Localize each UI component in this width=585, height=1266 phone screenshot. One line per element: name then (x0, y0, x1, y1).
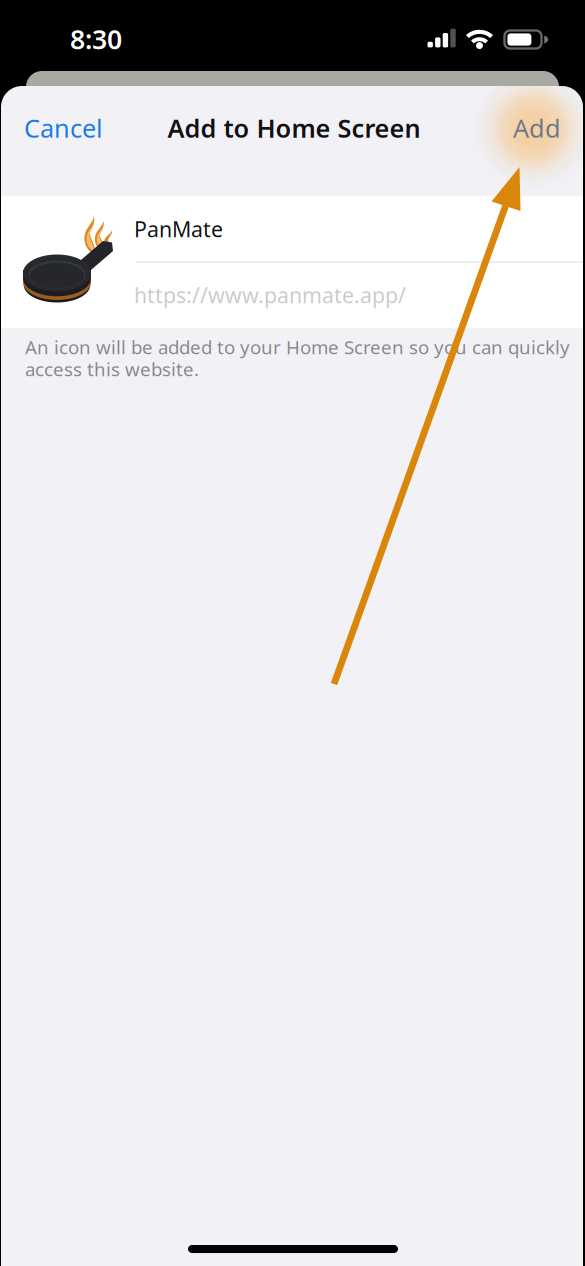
staticText: An icon will be added to your Home Scree… (25, 334, 570, 381)
button[interactable]: PanMate (134, 196, 580, 261)
staticText: Add (513, 111, 561, 145)
staticText: https://www.panmate.app/ (134, 281, 406, 309)
button[interactable]: https://www.panmate.app/ (134, 262, 580, 327)
staticText: 8:30 (70, 21, 122, 57)
staticText: Add to Home Screen (167, 111, 420, 145)
button[interactable]: Add (505, 104, 569, 152)
staticText: PanMate (134, 215, 223, 243)
button[interactable]: Cancel (17, 104, 109, 152)
staticText: Cancel (24, 111, 103, 145)
